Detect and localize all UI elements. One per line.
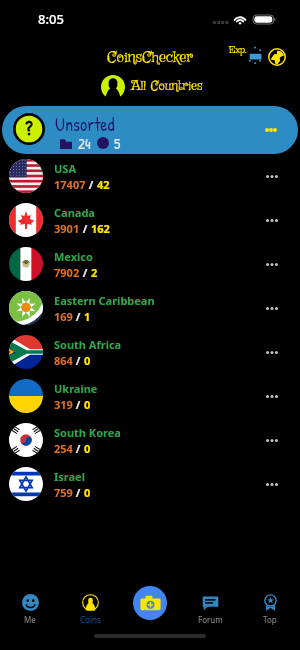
- staticText: All Countries: [131, 78, 203, 96]
- staticText: 0: [84, 397, 91, 412]
- staticText: 42: [97, 177, 110, 192]
- button[interactable]: Israel: [0, 462, 300, 506]
- staticText: Me: [24, 614, 36, 625]
- button[interactable]: Experience: [228, 42, 264, 70]
- button[interactable]: More options: [258, 117, 284, 143]
- staticText: 864: [54, 353, 73, 368]
- button[interactable]: More options: [255, 159, 289, 193]
- button[interactable]: More options: [255, 247, 289, 281]
- button[interactable]: More options: [255, 467, 289, 501]
- staticText: 2: [91, 265, 98, 280]
- staticText: 0: [84, 441, 91, 456]
- staticText: 169: [54, 309, 73, 324]
- staticText: /: [73, 309, 84, 324]
- staticText: /: [73, 397, 84, 412]
- staticText: CoinsChecker: [107, 47, 193, 68]
- staticText: 0: [84, 485, 91, 500]
- button[interactable]: South Korea: [0, 418, 300, 462]
- staticText: /: [80, 265, 91, 280]
- staticText: Coins: [80, 614, 101, 625]
- staticText: Canada: [54, 205, 95, 220]
- staticText: 254: [54, 441, 73, 456]
- button[interactable]: More options: [255, 291, 289, 325]
- staticText: ?: [25, 114, 33, 142]
- button[interactable]: Ukraine: [0, 374, 300, 418]
- staticText: 3901: [54, 221, 80, 236]
- staticText: 7902: [54, 265, 80, 280]
- button[interactable]: More options: [255, 423, 289, 457]
- button[interactable]: All Countries: [101, 75, 203, 99]
- button[interactable]: More options: [255, 379, 289, 413]
- staticText: /: [73, 441, 84, 456]
- staticText: 5: [114, 133, 121, 153]
- staticText: /: [86, 177, 97, 192]
- staticText: USA: [54, 161, 76, 176]
- staticText: Eastern Caribbean: [54, 293, 155, 308]
- staticText: Ukraine: [54, 381, 98, 396]
- staticText: 162: [91, 221, 110, 236]
- button[interactable]: All countries: [262, 43, 291, 71]
- staticText: 1: [84, 309, 91, 324]
- staticText: South Africa: [54, 337, 122, 352]
- staticText: 0: [84, 353, 91, 368]
- staticText: 17407: [54, 177, 86, 192]
- staticText: 8:05: [38, 10, 64, 28]
- button[interactable]: More options: [255, 203, 289, 237]
- button[interactable]: South Africa: [0, 330, 300, 374]
- button[interactable]: Canada: [0, 198, 300, 242]
- staticText: Israel: [54, 469, 85, 484]
- staticText: Unsorted: [55, 112, 115, 136]
- staticText: /: [80, 221, 91, 236]
- staticText: /: [73, 485, 84, 500]
- button[interactable]: USA: [0, 154, 300, 198]
- button[interactable]: ?: [2, 106, 298, 154]
- button[interactable]: Me: [0, 560, 60, 630]
- button[interactable]: More options: [255, 335, 289, 369]
- staticText: /: [73, 353, 84, 368]
- staticText: Exp.: [229, 43, 247, 57]
- staticText: Forum: [198, 614, 223, 625]
- button[interactable]: Add coin: [133, 586, 167, 620]
- staticText: Top: [263, 614, 277, 625]
- staticText: South Korea: [54, 425, 121, 440]
- button[interactable]: Coins: [60, 560, 120, 630]
- staticText: 24: [78, 133, 91, 153]
- staticText: Mexico: [54, 249, 93, 264]
- button[interactable]: Mexico: [0, 242, 300, 286]
- button[interactable]: Eastern Caribbean: [0, 286, 300, 330]
- staticText: 759: [54, 485, 73, 500]
- button[interactable]: Forum: [180, 560, 240, 630]
- staticText: 319: [54, 397, 73, 412]
- button[interactable]: Top: [240, 560, 300, 630]
